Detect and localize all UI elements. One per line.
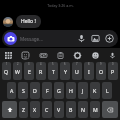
staticText: R — [39, 68, 43, 75]
button[interactable]: Voice input — [107, 50, 117, 60]
staticText: 6 — [64, 62, 66, 66]
button[interactable]: A — [7, 82, 16, 99]
button[interactable]: B — [66, 101, 76, 118]
staticText: U — [75, 68, 79, 75]
staticText: Y — [64, 68, 67, 75]
button[interactable]: L — [102, 82, 112, 99]
button[interactable]: Emoji — [90, 50, 100, 60]
staticText: I — [88, 68, 90, 75]
button[interactable]: C — [42, 101, 52, 118]
staticText: Hello ! — [21, 18, 36, 25]
button[interactable]: Backspace — [102, 101, 118, 118]
button[interactable]: Contact avatar — [3, 17, 13, 27]
staticText: A — [10, 87, 14, 94]
button[interactable]: F — [42, 82, 52, 99]
button[interactable]: Message... — [20, 36, 76, 42]
staticText: F — [46, 87, 49, 94]
button[interactable]: 1 — [2, 62, 11, 80]
staticText: Today 3:26 a.m. — [47, 3, 74, 8]
staticText: P — [111, 68, 115, 75]
button[interactable]: Shift — [2, 101, 17, 118]
button[interactable]: V — [54, 101, 64, 118]
staticText: S — [22, 87, 25, 94]
button[interactable]: GIF — [38, 50, 48, 60]
button[interactable]: K — [90, 82, 100, 99]
staticText: T — [52, 68, 55, 75]
staticText: 8 — [88, 62, 90, 66]
button[interactable]: 5 — [48, 62, 58, 80]
staticText: 5 — [52, 62, 54, 66]
button[interactable]: Clipboard — [55, 50, 65, 60]
button[interactable]: 0 — [108, 62, 118, 80]
button[interactable]: S — [18, 82, 28, 99]
staticText: 2 — [17, 62, 19, 66]
staticText: 0 — [112, 62, 114, 66]
button[interactable]: 7 — [72, 62, 82, 80]
button[interactable]: N — [78, 101, 88, 118]
staticText: J — [82, 87, 84, 94]
staticText: H — [69, 87, 73, 94]
staticText: B — [69, 106, 73, 113]
button[interactable]: X — [30, 101, 40, 118]
button[interactable]: Attach image — [90, 33, 101, 44]
staticText: O — [99, 68, 104, 75]
staticText: Z — [22, 106, 25, 113]
staticText: G — [57, 87, 61, 94]
button[interactable]: Hello ! — [16, 15, 41, 28]
staticText: K — [93, 87, 97, 94]
button[interactable]: 3 — [24, 62, 34, 80]
button[interactable]: J — [78, 82, 88, 99]
staticText: 1 — [6, 62, 8, 66]
button[interactable]: D — [30, 82, 40, 99]
button[interactable]: 8 — [84, 62, 94, 80]
button[interactable]: Voice message — [76, 33, 87, 44]
button[interactable]: 6 — [60, 62, 70, 80]
button[interactable]: H — [66, 82, 76, 99]
staticText: 3 — [28, 62, 30, 66]
staticText: 9 — [100, 62, 102, 66]
button[interactable]: G — [54, 82, 64, 99]
button[interactable]: Settings — [72, 50, 82, 60]
staticText: V — [57, 106, 61, 113]
staticText: D — [33, 87, 37, 94]
button[interactable]: 2 — [13, 62, 22, 80]
staticText: Q — [4, 68, 9, 75]
staticText: L — [106, 87, 109, 94]
button[interactable]: M — [90, 101, 100, 118]
staticText: M — [93, 106, 98, 113]
staticText: E — [28, 68, 31, 75]
button[interactable]: 9 — [96, 62, 106, 80]
button[interactable]: 4 — [36, 62, 46, 80]
button[interactable]: Z — [19, 101, 28, 118]
button[interactable]: More options — [104, 33, 115, 44]
staticText: 4 — [40, 62, 42, 66]
staticText: C — [45, 106, 49, 113]
button[interactable]: Keyboard switcher — [3, 50, 13, 60]
staticText: 7 — [76, 62, 78, 66]
staticText: N — [81, 106, 85, 113]
button[interactable]: Camera — [4, 32, 17, 45]
staticText: W — [15, 68, 20, 75]
button[interactable]: Stickers — [20, 50, 30, 60]
staticText: X — [33, 106, 37, 113]
